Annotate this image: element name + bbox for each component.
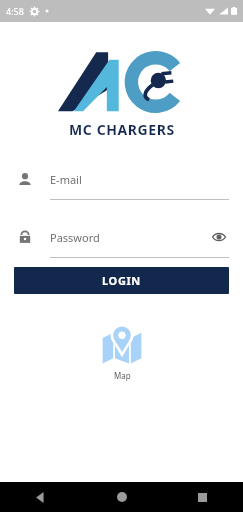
staticText: LOGIN <box>102 273 141 288</box>
button[interactable]: Recents <box>162 482 243 512</box>
button[interactable]: E-mail <box>14 168 229 200</box>
staticText: 4:58 <box>6 5 24 17</box>
button[interactable]: Back <box>0 482 81 512</box>
other: Password <box>18 230 32 244</box>
staticText: Map <box>114 370 131 381</box>
button[interactable]: LOGIN <box>14 267 229 294</box>
staticText: E-mail <box>50 172 229 187</box>
staticText: MC CHARGERS <box>69 120 175 139</box>
staticText: Password <box>50 230 209 245</box>
other: E-mail <box>18 172 32 186</box>
button[interactable]: Map <box>90 321 154 383</box>
button[interactable]: Password <box>14 226 229 258</box>
button[interactable]: Home <box>81 482 162 512</box>
button[interactable]: Show password <box>209 227 229 247</box>
